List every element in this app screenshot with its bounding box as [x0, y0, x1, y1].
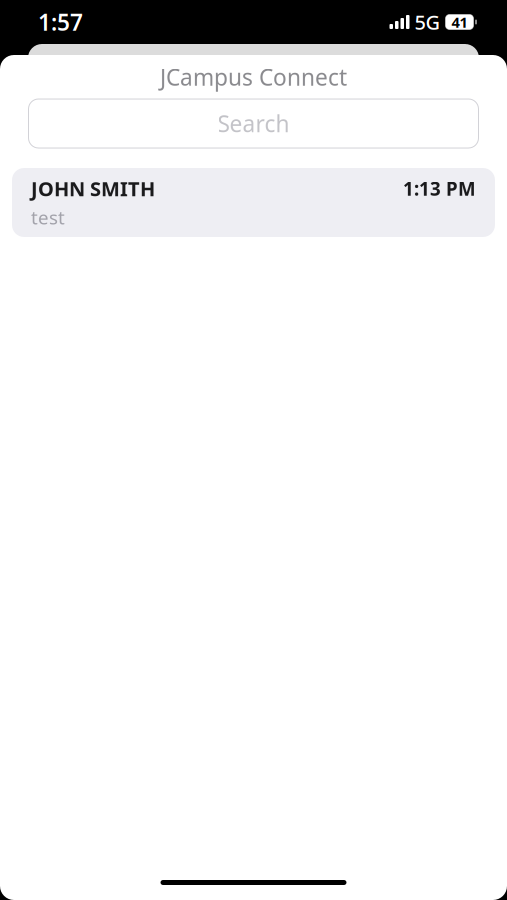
staticText: Search: [217, 108, 289, 138]
staticText: 1:13 PM: [403, 176, 476, 201]
staticText: JOHN SMITH: [31, 175, 155, 202]
staticText: 1:57: [38, 7, 83, 37]
staticText: 5G: [414, 9, 440, 35]
staticText: JCampus Connect: [160, 62, 347, 92]
button[interactable]: Search: [28, 99, 478, 148]
staticText: 41: [451, 12, 467, 32]
staticText: test: [31, 205, 65, 230]
button[interactable]: JOHN SMITH: [12, 168, 495, 237]
